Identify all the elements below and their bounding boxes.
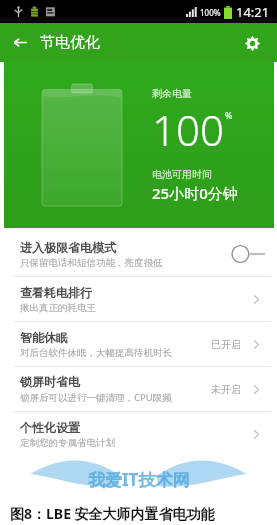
- button[interactable]: 进入极限省电模式: [0, 232, 277, 276]
- staticText: 25小时0分钟: [152, 183, 238, 203]
- button[interactable]: 智能休眠: [0, 322, 277, 366]
- staticText: 节电优化: [40, 33, 100, 52]
- button[interactable]: 锁屏时省电: [0, 367, 277, 411]
- staticText: 查看耗电排行: [20, 285, 92, 300]
- staticText: 对后台软件休眠，大幅提高待机时长: [20, 347, 172, 359]
- button[interactable]: Back: [0, 23, 40, 62]
- button[interactable]: 查看耗电排行: [0, 277, 277, 321]
- staticText: 电池可用时间: [152, 168, 212, 181]
- staticText: 剩余电量: [152, 87, 192, 100]
- staticText: 已开启: [211, 338, 241, 351]
- staticText: 揪出真正的耗电王: [20, 302, 96, 314]
- staticText: 锁屏后可以进行一键清理，CPU限频: [20, 391, 172, 404]
- staticText: 14:21: [236, 3, 270, 21]
- staticText: 锁屏时省电: [20, 374, 80, 389]
- button[interactable]: Settings: [233, 24, 271, 62]
- staticText: 只保留电话和短信功能，亮度很低: [20, 257, 163, 269]
- staticText: 智能休眠: [20, 330, 68, 345]
- staticText: 定制您的专属省电计划: [20, 437, 115, 449]
- staticText: %: [225, 109, 233, 121]
- button[interactable]: Toggle extreme power saving: [231, 244, 265, 264]
- button[interactable]: 个性化设置: [0, 412, 277, 456]
- staticText: 进入极限省电模式: [20, 240, 116, 255]
- staticText: 个性化设置: [20, 420, 80, 435]
- staticText: 100%: [200, 7, 221, 18]
- staticText: 图8：LBE 安全大师内置省电功能: [10, 504, 215, 523]
- staticText: 未开启: [211, 383, 241, 396]
- staticText: 100: [152, 101, 224, 158]
- staticText: 我爱IT技术网: [88, 468, 190, 491]
